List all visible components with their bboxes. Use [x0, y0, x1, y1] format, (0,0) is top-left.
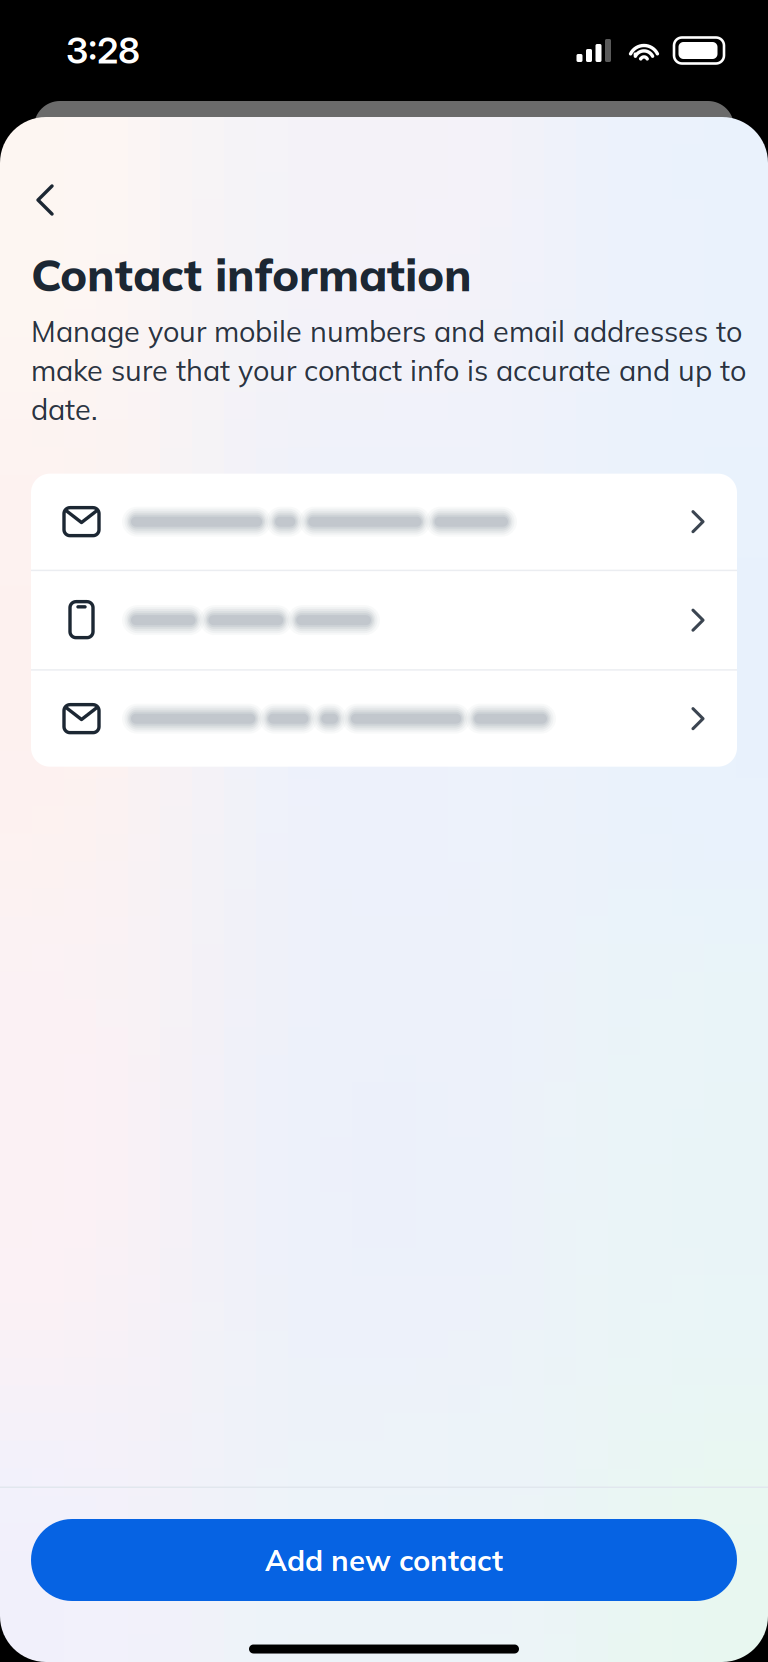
- button[interactable]: Add new contact: [31, 1519, 737, 1601]
- button[interactable]: Back: [16, 171, 74, 229]
- staticText: Contact information: [31, 246, 472, 303]
- button[interactable]: Mobile number: [31, 571, 737, 671]
- button[interactable]: Email address: [31, 671, 737, 767]
- button[interactable]: Email address: [31, 474, 737, 571]
- staticText: Add new contact: [265, 1542, 503, 1578]
- staticText: 3:28: [66, 29, 140, 72]
- staticText: Manage your mobile numbers and email add…: [31, 312, 746, 429]
